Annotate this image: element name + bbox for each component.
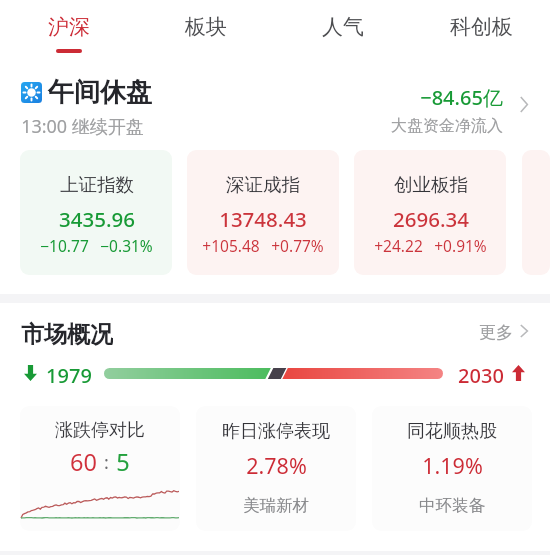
staticText: 涨跌停对比 xyxy=(55,419,145,442)
button[interactable]: 深证成指 xyxy=(187,150,339,275)
staticText: 60 xyxy=(70,446,97,478)
staticText: 市场概况 xyxy=(21,320,113,348)
staticText: 中环装备 xyxy=(419,495,485,516)
staticText: −10.77 xyxy=(40,235,89,256)
staticText: 美瑞新材 xyxy=(243,495,309,516)
staticText: 大盘资金净流入 xyxy=(391,116,503,136)
staticText: 上证指数 xyxy=(60,173,134,196)
staticText: +24.22 xyxy=(374,235,423,256)
staticText: 2030 xyxy=(458,362,504,384)
staticText: 2696.34 xyxy=(393,205,469,233)
staticText: 13:00 继续开盘 xyxy=(21,114,144,139)
staticText: 5 xyxy=(116,446,130,478)
staticText: +0.77% xyxy=(271,235,324,256)
staticText: 板块 xyxy=(185,14,227,40)
staticText: 1.19% xyxy=(422,451,483,480)
staticText: −84.65亿 xyxy=(420,84,503,111)
button[interactable]: 人气 xyxy=(274,0,412,49)
button[interactable]: 午间休盘 xyxy=(0,70,550,140)
button[interactable]: 更多 xyxy=(479,320,528,348)
button[interactable]: 创业板指 xyxy=(354,150,506,275)
staticText: 午间休盘 xyxy=(48,76,152,109)
button[interactable]: 同花顺热股 xyxy=(372,406,532,531)
button[interactable]: 板块 xyxy=(137,0,274,49)
button[interactable]: 科创板 xyxy=(412,0,550,49)
staticText: 2.78% xyxy=(246,451,307,480)
staticText: 同花顺热股 xyxy=(407,420,497,443)
staticText: +105.48 xyxy=(202,235,260,256)
staticText: 昨日涨停表现 xyxy=(222,420,330,443)
staticText: 13748.43 xyxy=(219,205,307,233)
staticText: 1979 xyxy=(46,362,92,384)
button[interactable]: 昨日涨停表现 xyxy=(196,406,356,531)
staticText: 更多 xyxy=(479,322,513,343)
staticText: 3435.96 xyxy=(59,205,135,233)
staticText: 创业板指 xyxy=(394,173,468,196)
staticText: +0.91% xyxy=(434,235,487,256)
staticText: −0.31% xyxy=(100,235,153,256)
staticText: 人气 xyxy=(322,14,364,40)
staticText: 科创板 xyxy=(450,14,513,40)
button[interactable]: 上证指数 xyxy=(20,150,172,275)
button[interactable]: 涨跌停对比 xyxy=(20,406,180,531)
staticText: 深证成指 xyxy=(226,173,300,196)
staticText: 沪深 xyxy=(48,14,90,40)
button[interactable]: 沪深 xyxy=(0,0,137,53)
staticText: : xyxy=(104,450,109,475)
